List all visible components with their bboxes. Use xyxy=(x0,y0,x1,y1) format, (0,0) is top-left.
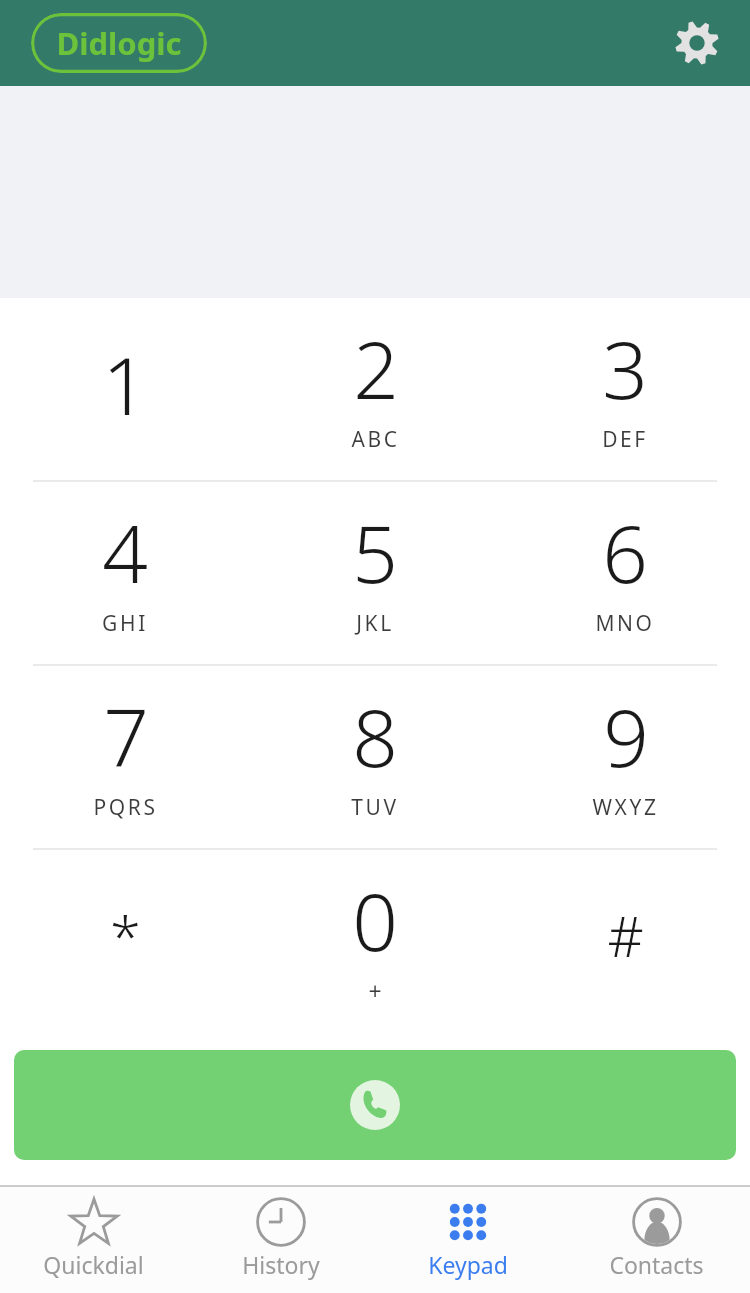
staticText: WXYZ xyxy=(592,793,659,822)
button[interactable]: * xyxy=(0,850,250,1032)
staticText: 5 xyxy=(352,497,398,606)
button[interactable]: History xyxy=(187,1187,374,1293)
staticText: History xyxy=(242,1249,320,1280)
staticText: ABC xyxy=(351,425,400,454)
staticText: 3 xyxy=(602,313,648,422)
button[interactable]: Didlogic xyxy=(31,13,207,73)
staticText: DEF xyxy=(602,425,648,454)
button[interactable]: 9 xyxy=(500,666,750,848)
staticText: Quickdial xyxy=(43,1249,144,1280)
button[interactable]: Quickdial xyxy=(0,1187,187,1293)
button[interactable]: 0 xyxy=(250,850,500,1032)
staticText: GHI xyxy=(102,609,148,638)
staticText: Keypad xyxy=(428,1249,508,1280)
button[interactable]: Settings xyxy=(668,14,726,72)
staticText: MNO xyxy=(595,609,655,638)
staticText: 9 xyxy=(603,681,649,790)
button[interactable]: Keypad xyxy=(374,1187,562,1293)
button[interactable]: 7 xyxy=(0,666,250,848)
button[interactable]: 4 xyxy=(0,482,250,664)
button[interactable]: Contacts xyxy=(562,1187,750,1293)
button[interactable]: 3 xyxy=(500,298,750,480)
staticText: 4 xyxy=(102,497,148,606)
staticText: 1 xyxy=(102,329,148,438)
staticText: 8 xyxy=(352,681,398,790)
staticText: 2 xyxy=(353,313,399,422)
button[interactable]: 8 xyxy=(250,666,500,848)
staticText: 0 xyxy=(352,865,398,974)
staticText: Contacts xyxy=(609,1249,704,1280)
button[interactable]: 5 xyxy=(250,482,500,664)
button[interactable]: 1 xyxy=(0,298,250,480)
staticText: 7 xyxy=(103,681,149,790)
staticText: TUV xyxy=(351,793,399,822)
staticText: Didlogic xyxy=(56,22,182,64)
staticText: + xyxy=(368,975,382,1006)
button[interactable]: 6 xyxy=(500,482,750,664)
staticText: # xyxy=(607,897,644,973)
staticText: JKL xyxy=(356,609,394,638)
staticText: PQRS xyxy=(93,793,158,822)
staticText: * xyxy=(110,897,141,973)
button[interactable]: Call xyxy=(14,1050,736,1160)
staticText: 6 xyxy=(602,497,648,606)
button[interactable]: # xyxy=(500,850,750,1032)
button[interactable]: 2 xyxy=(250,298,500,480)
